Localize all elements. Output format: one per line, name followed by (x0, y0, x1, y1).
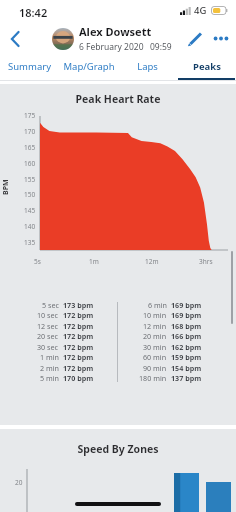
staticText: Map/Graph (63, 60, 115, 73)
staticText: 20 (15, 478, 23, 487)
staticText: 6 February 2020 (79, 41, 144, 53)
staticText: 3hrs (199, 257, 213, 266)
staticText: 175 (24, 111, 36, 120)
staticText: 172 bpm (63, 342, 94, 352)
staticText: 159 bpm (171, 352, 202, 362)
button[interactable]: More options (207, 22, 235, 55)
staticText: 10 min (143, 310, 167, 320)
staticText: Peak Heart Rate (0, 92, 236, 106)
staticText: Laps (137, 60, 158, 73)
staticText: 4G (194, 4, 207, 17)
button[interactable]: Peaks (177, 55, 236, 80)
staticText: 10 sec (37, 310, 59, 320)
button[interactable]: Summary (0, 55, 59, 80)
staticText: 90 min (143, 363, 167, 373)
staticText: 20 min (143, 331, 167, 341)
staticText: 150 (24, 190, 36, 199)
button[interactable]: Edit (181, 22, 207, 55)
staticText: 172 bpm (63, 352, 94, 362)
staticText: Peaks (193, 60, 221, 73)
staticText: 145 (24, 206, 36, 215)
staticText: Alex Dowsett (79, 24, 152, 39)
button[interactable]: Map/Graph (59, 55, 118, 80)
staticText: BPM (1, 179, 11, 195)
staticText: 135 (24, 238, 36, 247)
staticText: 09:59 (150, 41, 172, 53)
staticText: 137 bpm (171, 373, 202, 383)
staticText: 168 bpm (171, 321, 202, 331)
staticText: 160 (24, 159, 36, 168)
staticText: 60 min (143, 352, 167, 362)
staticText: 172 bpm (63, 363, 94, 373)
staticText: 172 bpm (63, 321, 94, 331)
staticText: 18:42 (19, 5, 48, 20)
staticText: 12 min (143, 321, 167, 331)
staticText: 169 bpm (171, 300, 202, 310)
staticText: 170 bpm (63, 373, 94, 383)
staticText: 172 bpm (63, 331, 94, 341)
staticText: 30 sec (37, 342, 59, 352)
staticText: 12m (145, 257, 159, 266)
staticText: 165 (24, 143, 36, 152)
staticText: Speed By Zones (0, 442, 236, 456)
staticText: 180 min (139, 373, 167, 383)
button[interactable]: Back (0, 22, 30, 55)
staticText: 5 min (40, 373, 59, 383)
staticText: 173 bpm (63, 300, 94, 310)
staticText: Summary (8, 60, 51, 73)
staticText: 20 sec (37, 331, 59, 341)
staticText: 154 bpm (171, 363, 202, 373)
staticText: 30 min (143, 342, 167, 352)
staticText: 172 bpm (63, 310, 94, 320)
button[interactable]: Laps (118, 55, 177, 80)
staticText: 1m (89, 257, 99, 266)
staticText: 155 (24, 175, 36, 184)
staticText: 5s (34, 257, 41, 266)
staticText: 169 bpm (171, 310, 202, 320)
staticText: 6 min (148, 300, 167, 310)
staticText: 170 (24, 127, 36, 136)
staticText: 162 bpm (171, 342, 202, 352)
staticText: 140 (24, 222, 36, 231)
staticText: 1 min (40, 352, 59, 362)
staticText: 5 sec (42, 300, 59, 310)
staticText: 12 sec (37, 321, 59, 331)
staticText: 166 bpm (171, 331, 202, 341)
staticText: 2 min (40, 363, 59, 373)
